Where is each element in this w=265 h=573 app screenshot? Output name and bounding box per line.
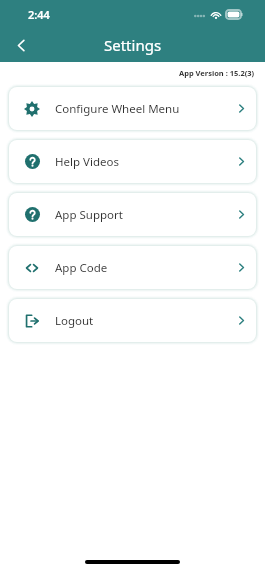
button[interactable]: App Support bbox=[9, 193, 256, 236]
staticText: Settings bbox=[104, 35, 162, 55]
staticText: App Support bbox=[55, 207, 226, 223]
staticText: Configure Wheel Menu bbox=[55, 101, 226, 117]
button[interactable]: Logout bbox=[9, 299, 256, 342]
staticText: App Code bbox=[55, 260, 226, 276]
staticText: Logout bbox=[55, 313, 226, 329]
button[interactable]: Help Videos bbox=[9, 140, 256, 183]
staticText: Help Videos bbox=[55, 154, 226, 170]
button[interactable]: App Code bbox=[9, 246, 256, 289]
staticText: App Version : 15.2(3) bbox=[179, 68, 255, 78]
button[interactable]: Configure Wheel Menu bbox=[9, 87, 256, 130]
button[interactable]: Back bbox=[4, 28, 38, 62]
staticText: 2:44 bbox=[28, 7, 50, 22]
